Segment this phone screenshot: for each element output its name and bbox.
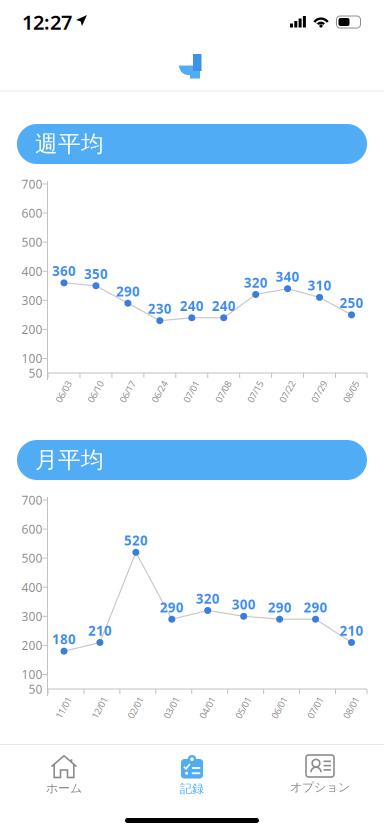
staticText: 310	[308, 276, 332, 294]
staticText: 月平均	[35, 446, 104, 474]
staticText: 50	[28, 365, 42, 381]
staticText: 290	[116, 282, 140, 300]
staticText: 04/01	[196, 702, 219, 714]
staticText: 50	[28, 681, 42, 697]
staticText: 240	[180, 297, 204, 315]
button[interactable]: オプション	[256, 745, 384, 800]
staticText: 300	[21, 292, 42, 308]
staticText: 06/10	[84, 386, 107, 398]
staticText: 06/03	[52, 386, 75, 398]
staticText: 400	[21, 579, 42, 595]
staticText: 250	[339, 294, 363, 312]
staticText: 100	[21, 666, 42, 682]
staticText: 06/17	[116, 386, 139, 398]
staticText: 11/01	[52, 702, 75, 714]
staticText: 320	[196, 590, 220, 607]
staticText: オプション	[290, 780, 350, 795]
staticText: 200	[21, 321, 42, 337]
staticText: 180	[52, 630, 76, 648]
button[interactable]: 週平均	[17, 124, 367, 164]
staticText: 520	[124, 531, 148, 549]
staticText: 500	[21, 234, 42, 250]
staticText: 07/29	[308, 386, 331, 398]
staticText: 02/01	[124, 702, 147, 714]
button[interactable]: 月平均	[17, 440, 367, 480]
staticText: 07/01	[180, 386, 203, 398]
staticText: 290	[160, 598, 184, 616]
staticText: 700	[21, 176, 42, 192]
staticText: 320	[244, 274, 268, 291]
staticText: 記録	[180, 781, 204, 796]
staticText: 週平均	[35, 130, 104, 158]
staticText: 08/01	[339, 702, 362, 714]
staticText: 06/24	[148, 386, 171, 398]
staticText: 600	[21, 205, 42, 221]
staticText: 400	[21, 263, 42, 279]
staticText: 06/01	[268, 702, 291, 714]
staticText: 240	[212, 297, 236, 315]
staticText: 200	[21, 637, 42, 653]
staticText: 08/05	[339, 386, 362, 398]
staticText: 07/22	[276, 386, 299, 398]
staticText: 05/01	[232, 702, 255, 714]
staticText: 07/08	[212, 386, 235, 398]
staticText: 230	[148, 300, 172, 317]
staticText: 600	[21, 521, 42, 537]
staticText: 210	[339, 622, 363, 639]
staticText: 210	[88, 622, 112, 639]
staticText: 340	[276, 268, 300, 285]
button[interactable]: ホーム	[0, 745, 128, 800]
staticText: 700	[21, 492, 42, 508]
staticText: 350	[84, 265, 108, 283]
staticText: 500	[21, 550, 42, 566]
staticText: 300	[232, 595, 256, 613]
staticText: 100	[21, 350, 42, 366]
staticText: 07/15	[244, 386, 267, 398]
staticText: 03/01	[160, 702, 183, 714]
staticText: ホーム	[46, 781, 82, 796]
button[interactable]: 記録	[128, 745, 256, 800]
staticText: 300	[21, 608, 42, 624]
staticText: 07/01	[304, 702, 327, 714]
staticText: 290	[268, 598, 292, 616]
staticText: 12/01	[88, 702, 111, 714]
staticText: 360	[52, 262, 76, 280]
staticText: 290	[304, 598, 328, 616]
staticText: 12:27	[22, 9, 72, 35]
